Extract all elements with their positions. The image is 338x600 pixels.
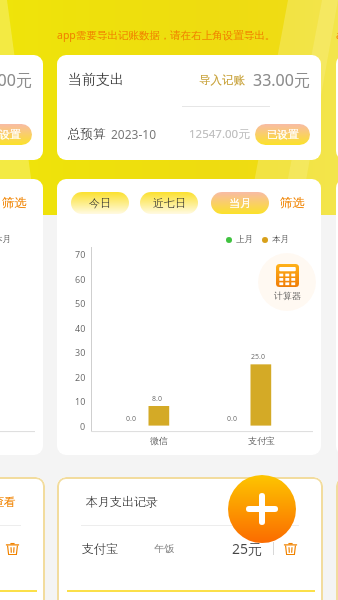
staticText: 60 — [75, 273, 86, 285]
staticText: 0.0 — [126, 414, 136, 424]
staticText: 筛选 — [2, 195, 27, 211]
staticText: 当月 — [229, 196, 251, 210]
staticText: app需要导出记账数据，请在右上角设置导出。 — [57, 28, 276, 42]
staticText: 本月支出记录 — [86, 494, 158, 509]
button[interactable]: 已设置 — [0, 124, 32, 145]
staticText: 午饭 — [154, 542, 174, 555]
staticText: 33.00元 — [0, 69, 32, 91]
staticText: 上月 — [236, 234, 253, 245]
staticText: 10 — [75, 395, 86, 407]
staticText: 本月 — [272, 234, 289, 245]
other: Delete — [5, 541, 20, 556]
staticText: 0 — [80, 420, 86, 432]
staticText: 30 — [75, 346, 86, 358]
button[interactable]: 当前支出 — [336, 55, 338, 160]
staticText: 总预算 — [68, 126, 106, 142]
staticText: 计算器 — [274, 290, 301, 301]
button[interactable]: 按日期查看 — [0, 494, 16, 509]
staticText: 12547.00元 — [189, 126, 250, 142]
staticText: app需要导出记账数据，请在右上角设置导出。 — [336, 28, 338, 42]
button[interactable]: 已设置 — [255, 124, 310, 145]
staticText: 2023-10 — [111, 126, 157, 142]
staticText: 本月 — [0, 234, 11, 245]
staticText: 0.0 — [227, 414, 237, 424]
button[interactable]: 按日期查看 — [234, 494, 294, 509]
staticText: 导入记账 — [199, 73, 245, 87]
staticText: 40 — [75, 322, 86, 334]
staticText: 支付宝 — [82, 541, 118, 556]
button[interactable]: Add record — [228, 475, 296, 543]
staticText: 按日期查看 — [0, 494, 16, 509]
staticText: 近七日 — [153, 196, 186, 210]
staticText: 25元 — [232, 539, 263, 558]
button[interactable]: 当前支出 — [57, 55, 321, 160]
other: Delete — [283, 541, 298, 556]
button[interactable]: 筛选 — [0, 191, 31, 215]
staticText: 筛选 — [280, 195, 305, 211]
staticText: 当前支出 — [68, 71, 124, 89]
staticText: 70 — [75, 248, 86, 260]
button[interactable]: 当月 — [211, 192, 269, 214]
staticText: 20 — [75, 371, 86, 383]
button[interactable]: 近七日 — [140, 192, 198, 214]
staticText: 今日 — [89, 196, 111, 210]
staticText: 按日期查看 — [234, 494, 294, 509]
staticText: 8.0 — [152, 394, 162, 404]
button[interactable]: 筛选 — [276, 191, 309, 215]
button[interactable]: 今日 — [71, 192, 129, 214]
staticText: 已设置 — [0, 128, 21, 141]
staticText: 支付宝 — [248, 435, 275, 446]
staticText: 25.0 — [251, 352, 265, 362]
button[interactable]: 当前支出 — [0, 55, 43, 160]
staticText: 33.00元 — [253, 69, 310, 91]
button[interactable]: 计算器 — [258, 253, 316, 311]
staticText: 微信 — [150, 435, 168, 446]
staticText: 50 — [75, 297, 86, 309]
staticText: 已设置 — [267, 128, 299, 141]
